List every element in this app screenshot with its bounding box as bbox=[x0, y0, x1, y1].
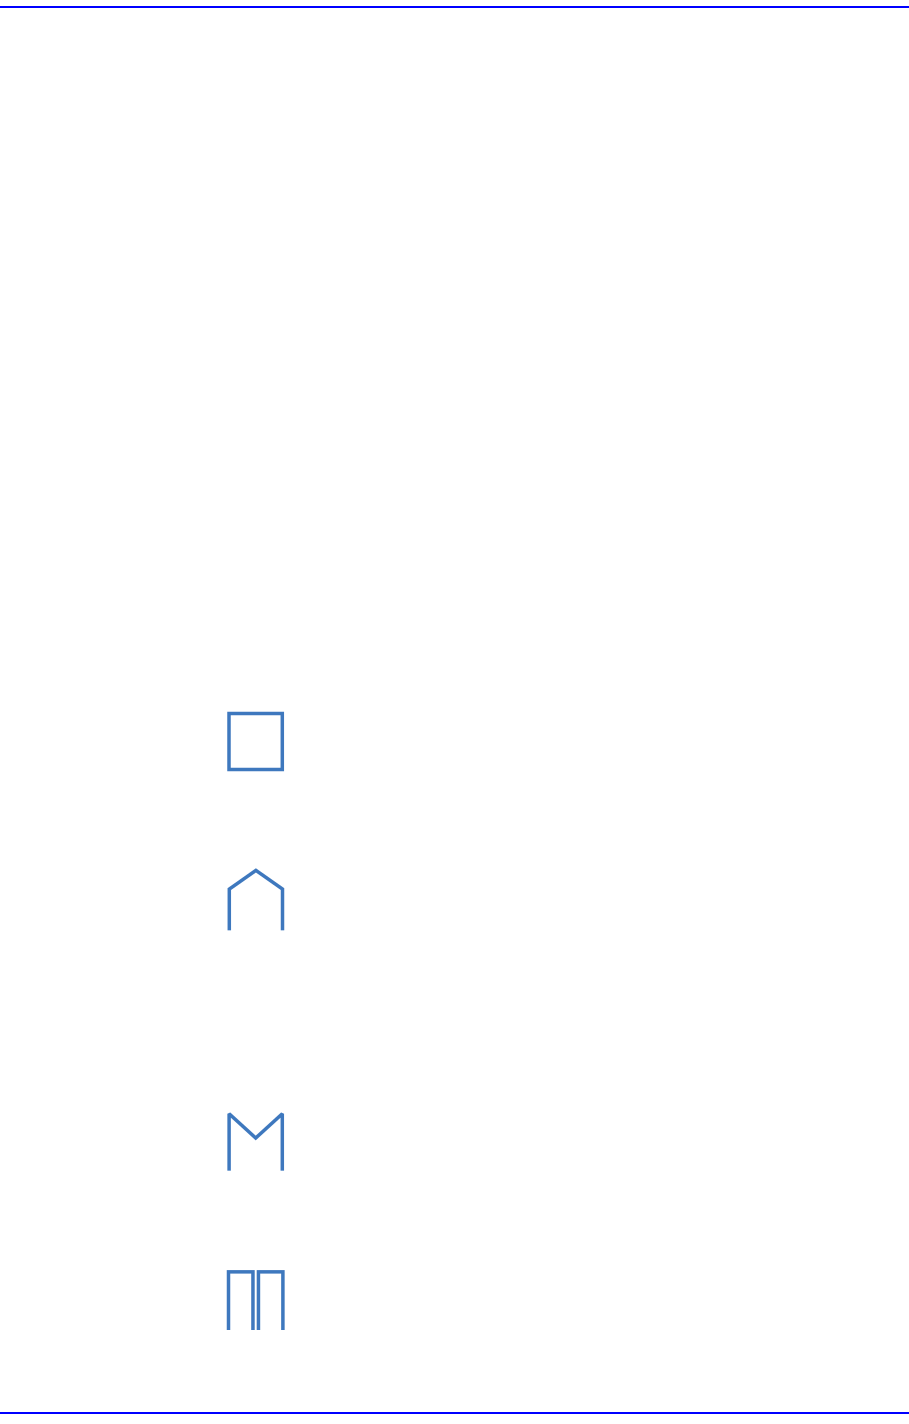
button[interactable]: Mail bbox=[229, 1072, 909, 1212]
button[interactable]: Library bbox=[228, 1231, 908, 1371]
button[interactable]: Home bbox=[229, 830, 909, 970]
button[interactable]: Placeholder bbox=[229, 671, 909, 811]
